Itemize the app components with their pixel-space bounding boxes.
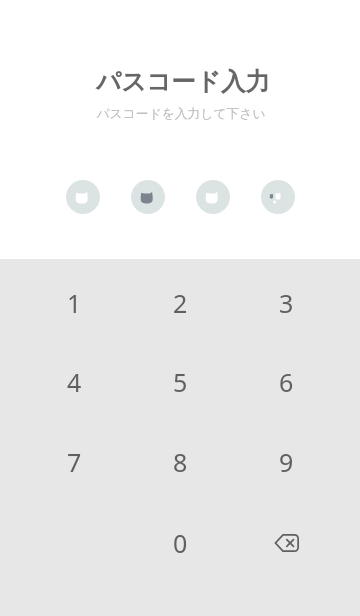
staticText: 5 [173, 365, 188, 399]
staticText: 4 [67, 365, 82, 399]
button[interactable]: 7 [21, 422, 127, 502]
button[interactable]: 1 [21, 263, 127, 343]
button[interactable]: 3 [233, 263, 339, 343]
staticText: 8 [173, 445, 188, 479]
button[interactable]: 9 [233, 422, 339, 502]
staticText: 3 [279, 286, 294, 320]
staticText: 9 [279, 445, 294, 479]
button[interactable]: 4 [21, 342, 127, 422]
button[interactable]: 2 [127, 263, 233, 343]
staticText: 2 [173, 286, 188, 320]
button[interactable]: 6 [233, 342, 339, 422]
staticText: 1 [67, 286, 82, 320]
staticText: 7 [67, 445, 82, 479]
button[interactable]: 0 [127, 503, 233, 583]
button[interactable]: 5 [127, 342, 233, 422]
button[interactable]: 8 [127, 422, 233, 502]
staticText: 0 [173, 526, 188, 560]
staticText: 6 [279, 365, 294, 399]
button[interactable]: Delete [233, 503, 339, 583]
staticText: パスコードを入力して下さい [96, 106, 266, 122]
staticText: パスコード入力 [96, 66, 270, 97]
